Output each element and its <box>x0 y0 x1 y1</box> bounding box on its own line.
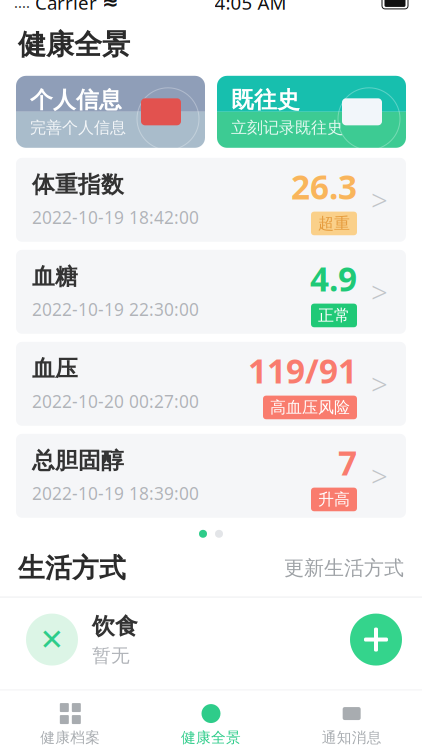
staticText: > <box>371 272 388 311</box>
button[interactable]: 体重指数 <box>16 158 406 242</box>
staticText: 26.3 <box>291 164 357 209</box>
button[interactable]: 个人信息 <box>16 76 205 148</box>
staticText: 健康档案 <box>40 729 100 747</box>
staticText: ✕ <box>39 623 64 656</box>
staticText: 高血压风险 <box>270 398 350 417</box>
staticText: 血压 <box>32 355 78 383</box>
staticText: 既往史 <box>231 86 300 114</box>
staticText: Carrier <box>35 0 97 15</box>
staticText: 健康全景 <box>18 27 130 62</box>
staticText: 更新生活方式 <box>284 556 404 580</box>
staticText: 通知消息 <box>322 729 382 747</box>
button[interactable]: 健康档案 <box>0 697 141 750</box>
staticText: 2022-10-19 22:30:00 <box>32 298 199 321</box>
button[interactable]: 既往史 <box>217 76 406 148</box>
staticText: 2022-10-19 18:42:00 <box>32 206 199 229</box>
button[interactable]: ✕ <box>0 600 207 680</box>
button[interactable]: 总胆固醇 <box>16 434 406 518</box>
staticText: > <box>371 456 388 495</box>
staticText: 超重 <box>318 214 350 233</box>
staticText: 个人信息 <box>30 86 122 114</box>
staticText: 升高 <box>318 490 350 509</box>
button[interactable]: 健康全景 <box>141 697 281 750</box>
staticText: ≈ <box>102 0 119 14</box>
staticText: .... <box>14 0 30 12</box>
staticText: 119/91 <box>248 348 357 393</box>
staticText: 7 <box>338 440 357 485</box>
staticText: 立刻记录既往史 <box>231 118 343 138</box>
staticText: > <box>371 180 388 219</box>
staticText: 完善个人信息 <box>30 118 126 138</box>
button[interactable]: 添加 <box>350 614 402 666</box>
staticText: 生活方式 <box>18 552 126 585</box>
staticText: 健康全景 <box>181 729 241 747</box>
staticText: 暂无 <box>92 644 130 667</box>
staticText: 2022-10-20 00:27:00 <box>32 390 199 413</box>
staticText: 2022-10-19 18:39:00 <box>32 482 199 505</box>
button[interactable]: 更新生活方式 <box>284 556 404 580</box>
button[interactable]: 通知消息 <box>281 697 422 750</box>
button[interactable]: 血糖 <box>16 250 406 334</box>
staticText: 正常 <box>318 306 350 325</box>
button[interactable]: 血压 <box>16 342 406 426</box>
staticText: 4.9 <box>310 256 357 301</box>
staticText: 4:05 AM <box>214 0 286 15</box>
staticText: 血糖 <box>32 263 78 291</box>
staticText: > <box>371 364 388 403</box>
staticText: 总胆固醇 <box>32 447 124 475</box>
staticText: 体重指数 <box>32 171 124 199</box>
staticText: 饮食 <box>92 612 138 640</box>
